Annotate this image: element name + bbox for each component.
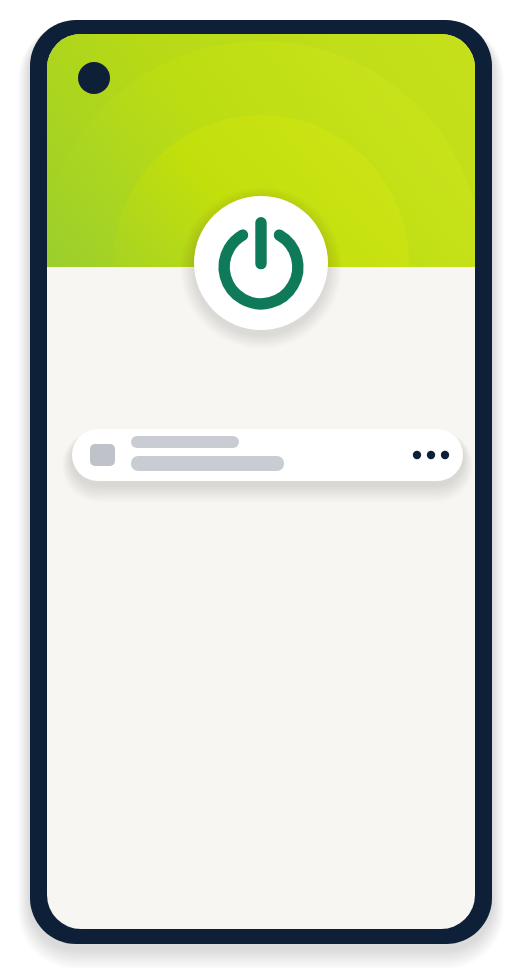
button[interactable]: List item <box>72 429 463 481</box>
button[interactable]: Power <box>194 196 328 330</box>
